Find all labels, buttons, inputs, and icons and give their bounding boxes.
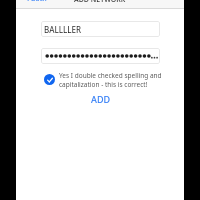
staticText: BALLLLER bbox=[44, 24, 82, 35]
staticText: ADD NETWORK bbox=[74, 0, 126, 4]
button[interactable]: BALLLLER bbox=[41, 21, 160, 37]
staticText: ADD bbox=[91, 93, 111, 105]
button[interactable]: ADD bbox=[83, 92, 119, 106]
button[interactable] bbox=[41, 48, 170, 64]
staticText: Yes I double checked spelling and capita… bbox=[59, 71, 162, 89]
button[interactable]: Back bbox=[16, 0, 53, 2]
staticText: Back bbox=[31, 0, 47, 1]
button[interactable]: Yes I double checked spelling and capita… bbox=[44, 73, 176, 91]
